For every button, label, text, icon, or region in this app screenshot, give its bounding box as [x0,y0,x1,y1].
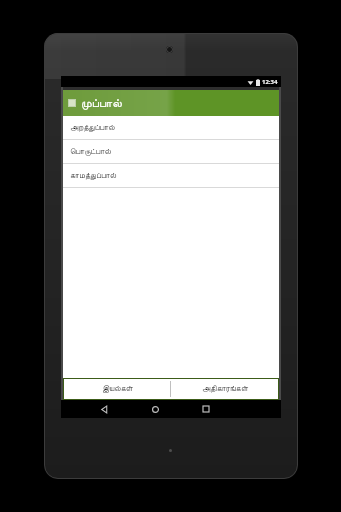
button[interactable]: காமத்துப்பால் [63,164,279,187]
button[interactable]: Home [146,400,164,418]
staticText: இயல்கள் [102,385,133,393]
button[interactable]: பொருட்பால் [63,140,279,163]
staticText: அறத்துப்பால் [70,124,115,132]
button[interactable]: அறத்துப்பால் [63,116,279,139]
button[interactable]: அதிகாரங்கள் [171,379,278,399]
staticText: 12:34 [262,78,278,86]
button[interactable]: Back [95,400,113,418]
button[interactable]: இயல்கள் [64,379,170,399]
button[interactable]: முப்பால் [63,90,279,116]
staticText: அதிகாரங்கள் [202,385,248,393]
button[interactable]: Recent apps [197,400,215,418]
staticText: காமத்துப்பால் [70,172,117,180]
staticText: முப்பால் [81,97,122,109]
staticText: பொருட்பால் [70,148,111,156]
